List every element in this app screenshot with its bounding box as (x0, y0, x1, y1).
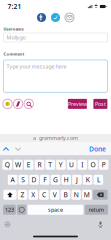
staticText: Post (95, 100, 106, 107)
button[interactable]: L (94, 175, 103, 185)
button[interactable]: T (45, 160, 55, 170)
button[interactable]: N (71, 190, 81, 200)
button[interactable]: return (85, 205, 108, 215)
staticText: return (89, 206, 104, 213)
staticText: K (86, 175, 90, 184)
staticText: Done (89, 145, 106, 153)
staticText: Mollygo (6, 34, 25, 41)
button[interactable]: Share on Facebook (37, 13, 46, 22)
button[interactable]: J (72, 175, 82, 185)
button[interactable]: F (40, 175, 50, 185)
button[interactable]: Share by email (65, 13, 74, 22)
button[interactable]: C (39, 190, 49, 200)
button[interactable]: O (88, 160, 98, 170)
button[interactable]: Share on Twitter (51, 13, 60, 22)
button[interactable]: A (8, 175, 17, 185)
staticText: space (48, 206, 63, 213)
staticText: E (27, 160, 31, 169)
button[interactable]: Previous field (0, 144, 12, 154)
staticText: A (11, 175, 15, 184)
staticText: J (76, 175, 78, 184)
button[interactable]: Y (56, 160, 66, 170)
button[interactable]: space (28, 205, 83, 215)
button[interactable]: Formatting (13, 99, 23, 109)
button[interactable]: Next keyboard (17, 205, 26, 215)
staticText: R (37, 160, 41, 169)
staticText: N (74, 190, 79, 199)
button[interactable]: D (29, 175, 39, 185)
button[interactable]: H (61, 175, 71, 185)
button[interactable]: Q (2, 160, 12, 170)
button[interactable]: Z (18, 190, 27, 200)
button[interactable]: E (24, 160, 33, 170)
staticText: Comment (3, 51, 24, 57)
button[interactable]: Insert emoji (2, 99, 12, 109)
button[interactable]: Post (93, 99, 107, 109)
staticText: Q (5, 160, 10, 169)
staticText: 7:21 (7, 2, 21, 11)
button[interactable]: Search (24, 99, 34, 109)
staticText: M (84, 190, 90, 199)
button[interactable]: Done (89, 144, 111, 154)
staticText: H (64, 175, 69, 184)
button[interactable]: 123 (3, 205, 16, 215)
staticText: Preview (68, 100, 87, 107)
button[interactable]: Preview (68, 99, 87, 109)
button[interactable]: B (61, 190, 70, 200)
staticText: B (63, 190, 67, 199)
button[interactable]: Shift (3, 190, 17, 200)
button[interactable]: P (99, 160, 109, 170)
button[interactable]: S (19, 175, 28, 185)
staticText: D (32, 175, 37, 184)
button[interactable]: U (67, 160, 76, 170)
button[interactable]: K (83, 175, 92, 185)
staticText: a grammarly.com (33, 134, 78, 142)
button[interactable]: Delete (93, 190, 108, 200)
button[interactable]: X (28, 190, 38, 200)
button[interactable]: Dictation (95, 221, 106, 228)
staticText: Z (20, 190, 24, 199)
staticText: O (90, 160, 95, 169)
button[interactable]: V (50, 190, 59, 200)
button[interactable]: Emoji keyboard (2, 221, 13, 228)
staticText: Y (59, 160, 63, 169)
staticText: G (53, 175, 58, 184)
staticText: F (43, 175, 46, 184)
staticText: 123 (5, 206, 14, 213)
staticText: C (42, 190, 46, 199)
button[interactable]: I (77, 160, 87, 170)
staticText: S (21, 175, 25, 184)
staticText: L (97, 175, 100, 184)
staticText: U (69, 160, 74, 169)
button[interactable]: Next field (12, 144, 24, 154)
staticText: P (102, 160, 106, 169)
staticText: V (53, 190, 57, 199)
staticText: Type your message here (7, 63, 67, 70)
button[interactable]: M (82, 190, 92, 200)
button[interactable]: G (51, 175, 60, 185)
staticText: X (31, 190, 35, 199)
button[interactable]: W (13, 160, 23, 170)
staticText: I (81, 160, 83, 169)
staticText: Username (3, 26, 23, 32)
staticText: T (48, 160, 52, 169)
button[interactable]: R (35, 160, 44, 170)
staticText: W (15, 160, 21, 169)
